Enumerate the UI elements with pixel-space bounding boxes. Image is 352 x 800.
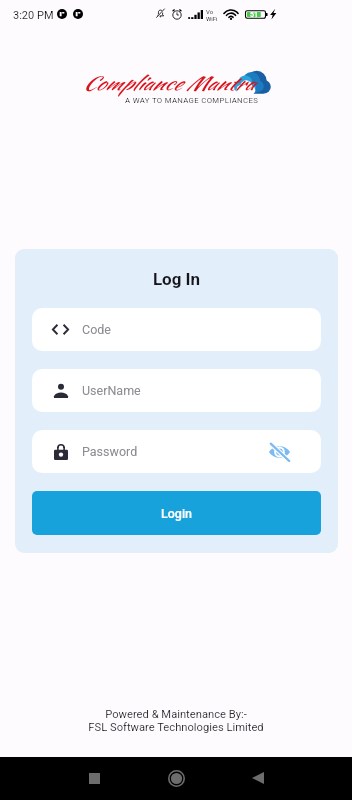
button[interactable]: Recent apps — [73, 757, 115, 799]
staticText: Powered & Maintenance By:- — [105, 708, 247, 721]
staticText: WiFi — [206, 15, 218, 22]
staticText: A WAY TO MANAGE COMPLIANCES — [125, 96, 259, 105]
button[interactable]: UserName — [32, 369, 321, 412]
staticText: Code — [82, 322, 111, 337]
button[interactable]: Code — [32, 308, 321, 351]
staticText: Password — [82, 444, 138, 459]
staticText: Vo — [206, 8, 214, 15]
button[interactable]: Password — [32, 430, 321, 473]
staticText: 51 — [250, 11, 258, 19]
staticText: UserName — [82, 383, 141, 398]
staticText: Log In — [32, 269, 321, 289]
button[interactable]: Back — [237, 757, 279, 799]
staticText: FSL Software Technologies Limited — [88, 721, 264, 734]
staticText: Login — [161, 506, 193, 521]
button[interactable]: Show password — [266, 439, 292, 465]
staticText: 3:20 PM — [13, 9, 54, 22]
staticText: Compliance Mantra — [82, 69, 253, 96]
button[interactable]: Home — [155, 757, 197, 799]
button[interactable]: Login — [32, 491, 321, 535]
